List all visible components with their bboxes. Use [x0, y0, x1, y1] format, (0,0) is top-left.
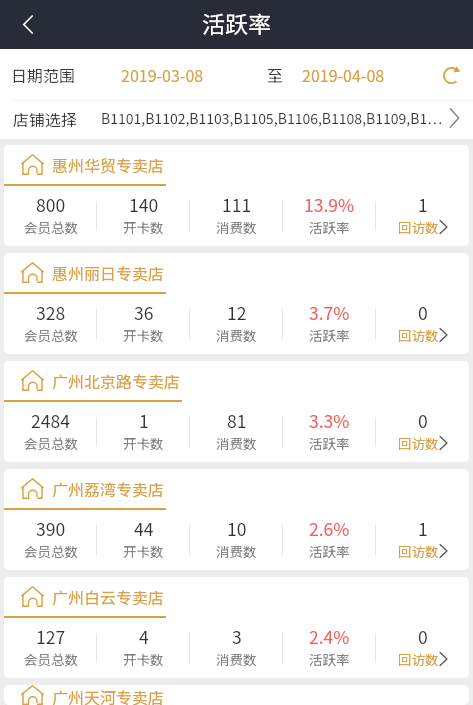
staticText: 会员总数	[24, 217, 78, 237]
staticText: 会员总数	[24, 649, 78, 669]
staticText: 开卡数	[123, 541, 164, 561]
staticText: B1101,B1102,B1103,B1105,B1106,B1108,B110…	[101, 108, 444, 128]
staticText: 328	[36, 300, 66, 325]
staticText: 81	[227, 408, 247, 433]
staticText: 回访数	[398, 649, 439, 669]
staticText: 2019-04-08	[302, 63, 385, 86]
staticText: 广州北京路专卖店	[52, 369, 181, 392]
staticText: 回访数	[398, 433, 439, 453]
button[interactable]: 广州天河专卖店	[4, 685, 469, 705]
staticText: 开卡数	[123, 649, 164, 669]
staticText: 店铺选择	[13, 107, 78, 130]
staticText: 2484	[31, 408, 70, 433]
staticText: 活跃率	[309, 649, 350, 669]
staticText: 1	[418, 516, 428, 541]
staticText: 会员总数	[24, 433, 78, 453]
staticText: 会员总数	[24, 325, 78, 345]
staticText: 日期范围	[11, 63, 76, 86]
staticText: 111	[222, 192, 252, 217]
staticText: 活跃率	[309, 325, 350, 345]
staticText: 13.9%	[304, 192, 355, 217]
staticText: 活跃率	[202, 6, 271, 39]
staticText: 4	[139, 624, 149, 649]
button[interactable]: 广州白云专卖店	[4, 577, 469, 678]
staticText: 0	[418, 408, 428, 433]
staticText: 12	[227, 300, 247, 325]
staticText: 开卡数	[123, 217, 164, 237]
staticText: 44	[134, 516, 154, 541]
staticText: 0	[418, 624, 428, 649]
button[interactable]: 店铺选择	[0, 101, 473, 139]
staticText: 回访数	[398, 541, 439, 561]
staticText: 1	[418, 192, 428, 217]
staticText: 消费数	[216, 649, 257, 669]
button[interactable]: Refresh	[435, 59, 467, 91]
staticText: 3	[232, 624, 242, 649]
staticText: 开卡数	[123, 433, 164, 453]
button[interactable]: 广州北京路专卖店	[4, 361, 469, 462]
staticText: 390	[36, 516, 66, 541]
staticText: 活跃率	[309, 433, 350, 453]
staticText: 3.7%	[309, 300, 350, 325]
staticText: 2.4%	[309, 624, 350, 649]
staticText: 广州白云专卖店	[52, 585, 165, 608]
staticText: 0	[418, 300, 428, 325]
staticText: 2019-03-08	[121, 63, 204, 86]
staticText: 消费数	[216, 217, 257, 237]
staticText: 消费数	[216, 325, 257, 345]
staticText: 开卡数	[123, 325, 164, 345]
staticText: 会员总数	[24, 541, 78, 561]
staticText: 2.6%	[309, 516, 350, 541]
staticText: 消费数	[216, 541, 257, 561]
staticText: 活跃率	[309, 541, 350, 561]
button[interactable]: 惠州华贸专卖店	[4, 145, 469, 246]
button[interactable]: Back	[0, 0, 55, 49]
button[interactable]: 广州荔湾专卖店	[4, 469, 469, 570]
staticText: 回访数	[398, 325, 439, 345]
staticText: 800	[36, 192, 66, 217]
staticText: 10	[227, 516, 247, 541]
staticText: 3.3%	[309, 408, 350, 433]
button[interactable]: 惠州丽日专卖店	[4, 253, 469, 354]
staticText: 回访数	[398, 217, 439, 237]
staticText: 140	[129, 192, 159, 217]
staticText: 惠州华贸专卖店	[52, 153, 165, 176]
staticText: 36	[134, 300, 154, 325]
staticText: 惠州丽日专卖店	[52, 261, 165, 284]
staticText: 消费数	[216, 433, 257, 453]
staticText: 活跃率	[309, 217, 350, 237]
staticText: 广州天河专卖店	[52, 685, 165, 705]
staticText: 1	[139, 408, 149, 433]
button[interactable]: 2019-04-08	[302, 63, 385, 86]
button[interactable]: 2019-03-08	[121, 63, 204, 86]
staticText: 广州荔湾专卖店	[52, 477, 165, 500]
staticText: 至	[267, 63, 284, 86]
staticText: 127	[36, 624, 66, 649]
